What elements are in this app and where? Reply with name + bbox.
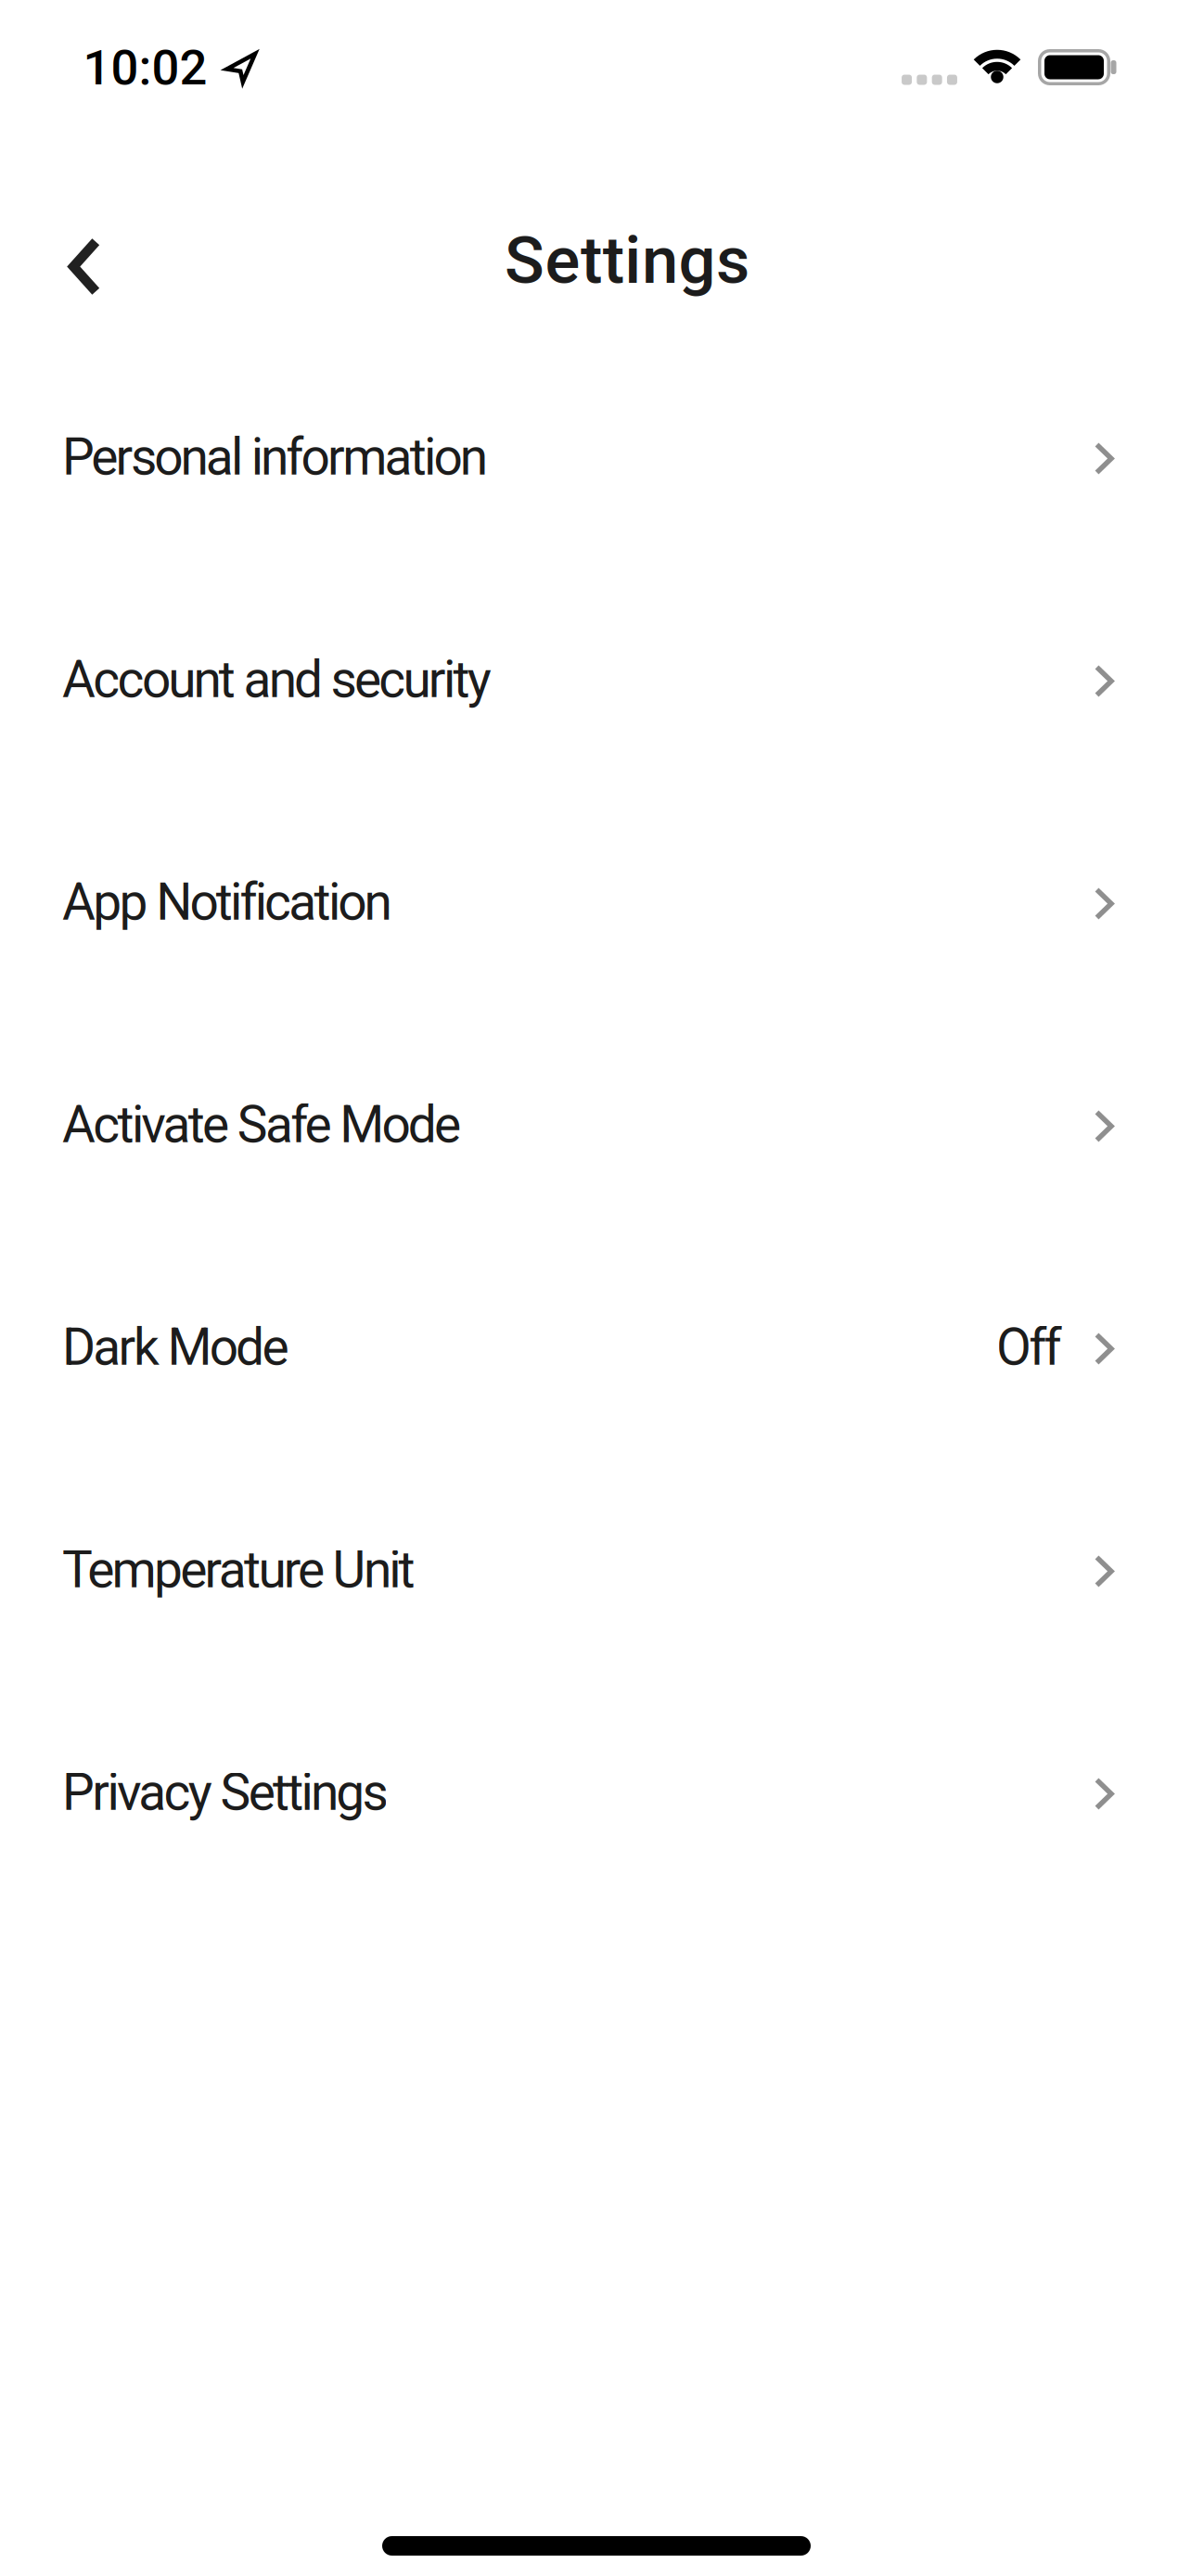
staticText: Privacy Settings	[62, 1763, 388, 1822]
staticText: Account and security	[62, 650, 491, 710]
staticText: Personal information	[62, 427, 488, 487]
button[interactable]: Account and security	[0, 568, 1191, 791]
button[interactable]: Back	[46, 214, 124, 319]
staticText: 10:02	[83, 39, 207, 96]
staticText: App Notification	[62, 872, 392, 932]
button[interactable]: Privacy Settings	[0, 1681, 1191, 1904]
staticText: Off	[996, 1317, 1062, 1377]
button[interactable]: Temperature Unit	[0, 1459, 1191, 1681]
staticText: Settings	[505, 222, 750, 299]
staticText: Temperature Unit	[62, 1540, 415, 1600]
button[interactable]: Personal information	[0, 346, 1191, 568]
button[interactable]: Dark Mode	[0, 1236, 1191, 1459]
button[interactable]: App Notification	[0, 791, 1191, 1014]
button[interactable]: Activate Safe Mode	[0, 1014, 1191, 1236]
staticText: Dark Mode	[62, 1317, 289, 1377]
staticText: Activate Safe Mode	[62, 1095, 461, 1155]
